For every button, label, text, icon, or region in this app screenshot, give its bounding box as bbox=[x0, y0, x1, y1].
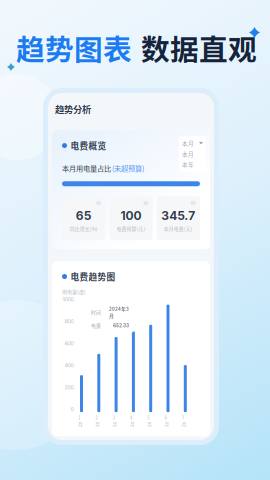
staticText: 电费 bbox=[91, 322, 101, 329]
staticText: 趋势分析 bbox=[55, 102, 91, 116]
staticText: 0 bbox=[70, 406, 73, 413]
staticText: 65 bbox=[76, 208, 92, 223]
staticText: 100 bbox=[120, 208, 141, 223]
staticText: 本月 bbox=[182, 139, 194, 147]
staticText: 800 bbox=[64, 318, 73, 325]
staticText: 4月 bbox=[130, 414, 135, 427]
staticText: (未超预算) bbox=[112, 163, 144, 173]
staticText: 7月 bbox=[182, 414, 187, 427]
staticText: 345.7 bbox=[161, 208, 195, 223]
staticText: 本月用电量占比 bbox=[62, 163, 111, 173]
staticText: 本月电费(元) bbox=[164, 225, 193, 232]
staticText: 本月 bbox=[182, 150, 194, 158]
staticText: 6月 bbox=[164, 414, 169, 427]
staticText: 2024年3月 bbox=[109, 305, 129, 319]
staticText: 电费概览 bbox=[70, 139, 106, 152]
staticText: 400 bbox=[64, 362, 73, 369]
staticText: 3月 bbox=[113, 414, 118, 427]
staticText: 652.33 bbox=[113, 323, 129, 328]
staticText: 数据直观 bbox=[141, 27, 257, 68]
staticText: 趋势图表 bbox=[16, 27, 132, 68]
staticText: 本年 bbox=[182, 160, 194, 169]
staticText: 1月 bbox=[78, 414, 83, 427]
staticText: 600 bbox=[64, 340, 73, 347]
staticText: 电费预算(元) bbox=[116, 225, 145, 232]
staticText: 5月 bbox=[147, 414, 152, 427]
staticText: 用电量(度) bbox=[62, 288, 86, 295]
staticText: 同比增长(%) bbox=[70, 225, 98, 232]
staticText: 1000 bbox=[62, 296, 73, 303]
staticText: 时间 bbox=[91, 309, 101, 316]
staticText: 电费趋势图 bbox=[70, 270, 115, 283]
staticText: 200 bbox=[64, 384, 73, 391]
staticText: 2月 bbox=[95, 414, 100, 427]
button[interactable]: 本月 bbox=[179, 136, 206, 172]
